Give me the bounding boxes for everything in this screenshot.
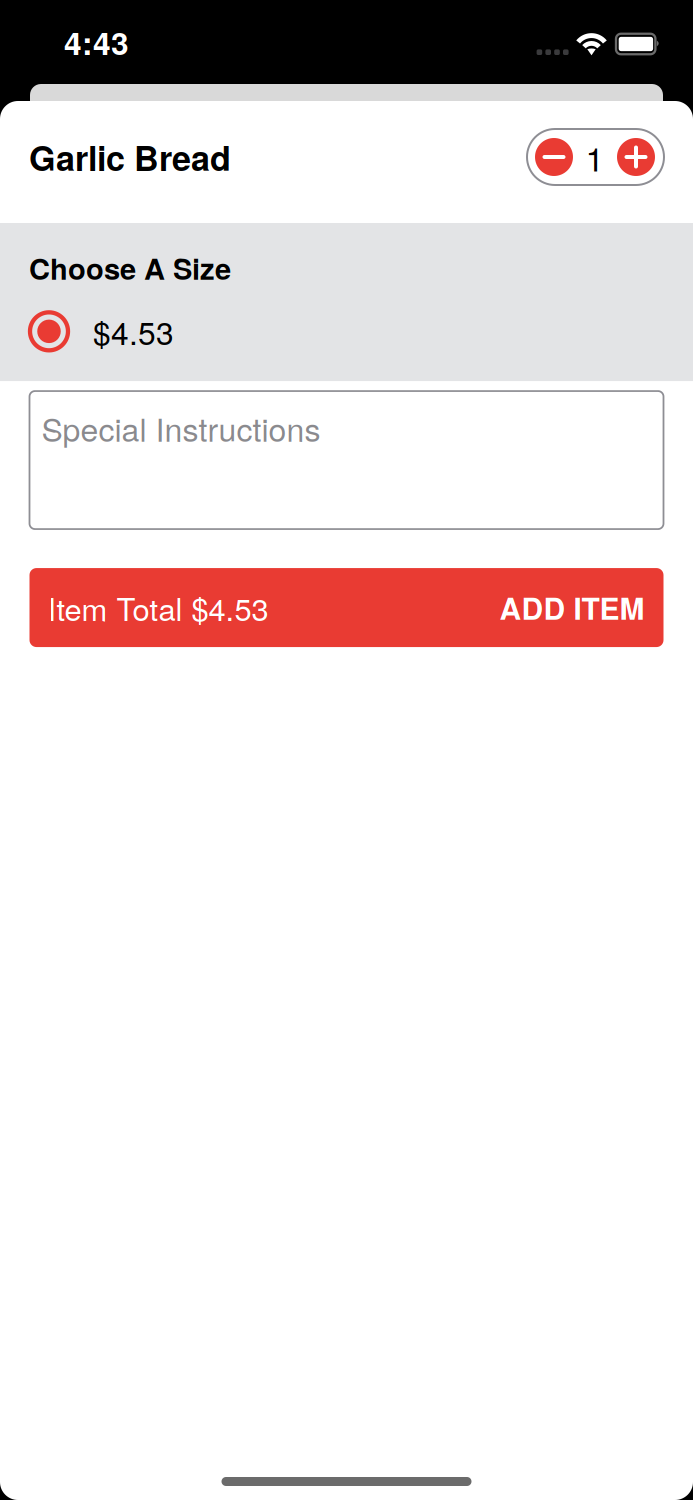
staticText: Garlic Bread — [29, 133, 231, 181]
staticText: $4.53 — [93, 309, 174, 354]
staticText: Special Instructions — [41, 405, 320, 451]
button[interactable]: Increase quantity — [617, 138, 655, 176]
button[interactable]: Special Instructions — [29, 391, 663, 529]
button[interactable]: $4.53 — [0, 289, 693, 381]
staticText: 1 — [585, 133, 604, 181]
staticText: Choose A Size — [29, 247, 231, 289]
staticText: Item Total $4.53 — [47, 585, 268, 630]
staticText: 4:43 — [64, 19, 129, 65]
staticText: ADD ITEM — [499, 586, 644, 629]
button[interactable]: Decrease quantity — [535, 138, 573, 176]
button[interactable]: Item Total $4.53 — [29, 568, 663, 647]
